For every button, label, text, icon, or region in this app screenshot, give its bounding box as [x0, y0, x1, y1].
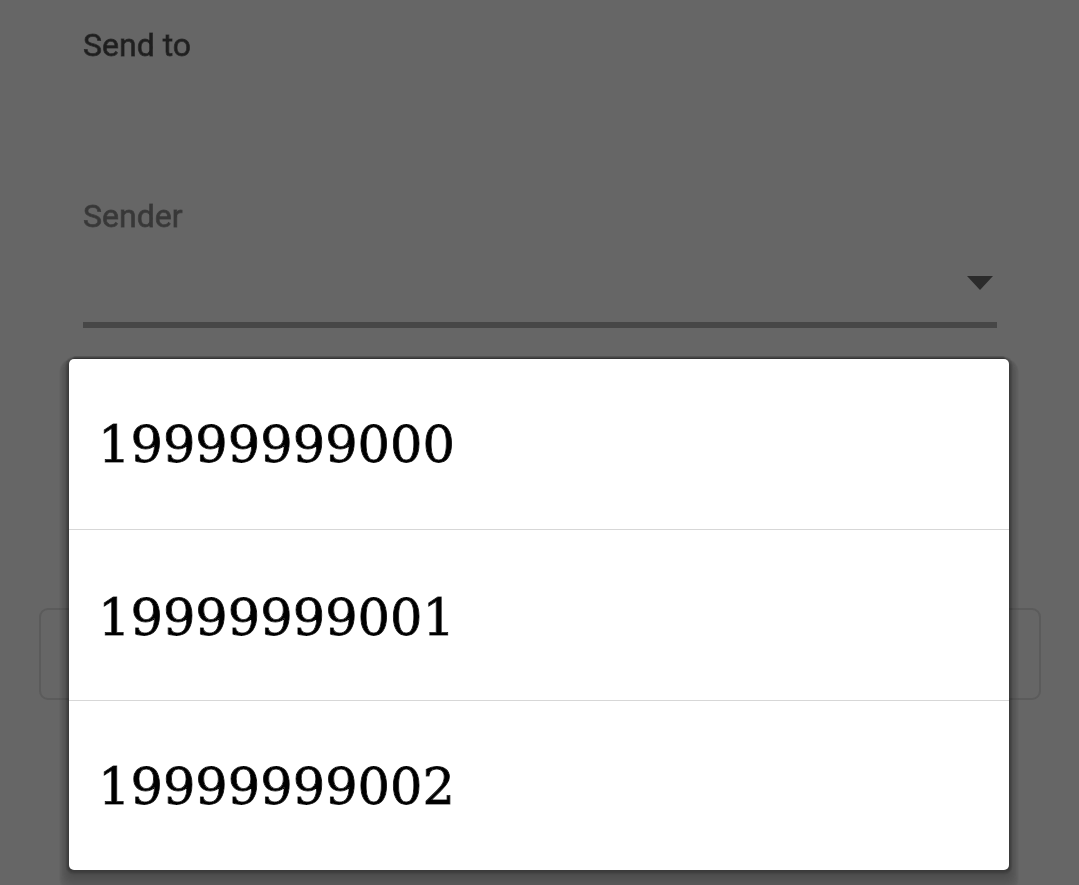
staticText: 19999999002 — [98, 757, 455, 816]
staticText: 19999999000 — [98, 415, 455, 474]
staticText: 19999999001 — [98, 588, 455, 647]
staticText: 19999999002 — [98, 757, 455, 816]
button[interactable]: 19999999002 — [69, 701, 1009, 870]
staticText: 19999999000 — [98, 415, 455, 474]
button[interactable] — [39, 608, 1041, 700]
staticText: Send to — [83, 26, 192, 64]
button[interactable]: Open sender dropdown — [954, 262, 1006, 308]
button[interactable]: 19999999001 — [69, 530, 1009, 700]
staticText: Send to — [83, 26, 192, 64]
button[interactable]: 19999999000 — [69, 359, 1009, 529]
button[interactable]: Send to — [83, 26, 192, 64]
staticText: 19999999001 — [98, 588, 455, 647]
staticText: Sender — [83, 197, 183, 235]
staticText: Sender — [83, 197, 183, 235]
